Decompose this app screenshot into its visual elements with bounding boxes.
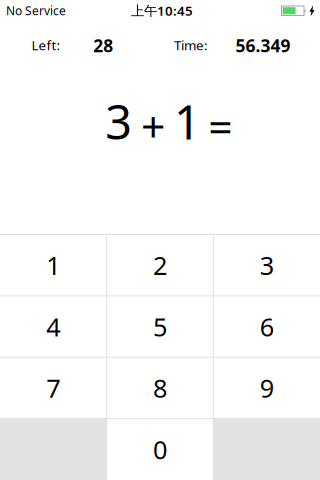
staticText: 8 (153, 371, 167, 405)
staticText: 5 (153, 310, 167, 343)
staticText: 3 (105, 90, 132, 152)
button[interactable]: 1 (0, 235, 106, 295)
button[interactable]: 0 (107, 419, 213, 479)
staticText: 1 (46, 248, 60, 282)
button[interactable]: 8 (107, 358, 213, 418)
button[interactable]: 7 (0, 358, 106, 418)
staticText: 4 (46, 310, 60, 343)
staticText: + (141, 98, 165, 154)
staticText: 上午10:45 (131, 2, 193, 19)
staticText: Left: (31, 36, 60, 54)
staticText: 28 (93, 34, 113, 57)
button[interactable]: 2 (107, 235, 213, 295)
button[interactable]: 5 (107, 296, 213, 357)
staticText: 1 (174, 90, 201, 152)
staticText: 3 (260, 248, 274, 282)
staticText: 6 (260, 310, 274, 343)
staticText: Time: (174, 36, 208, 54)
staticText: = (208, 97, 232, 154)
staticText: 2 (153, 248, 167, 282)
staticText: 0 (153, 432, 167, 466)
button[interactable]: 4 (0, 296, 106, 357)
staticText: 7 (46, 371, 60, 405)
button[interactable]: 3 (214, 235, 319, 295)
button[interactable]: 6 (214, 296, 319, 357)
staticText: 56.349 (235, 34, 290, 57)
staticText: No Service (6, 2, 66, 18)
button[interactable]: 9 (214, 358, 319, 418)
staticText: 9 (260, 371, 274, 405)
